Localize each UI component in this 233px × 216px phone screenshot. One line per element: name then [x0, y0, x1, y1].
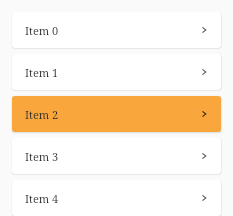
staticText: Item 4 — [25, 191, 59, 206]
button[interactable]: Item 1 — [12, 54, 221, 90]
button[interactable]: Item 4 — [12, 180, 221, 216]
staticText: Item 3 — [25, 149, 59, 164]
button[interactable]: Item 0 — [12, 12, 221, 48]
staticText: Item 2 — [25, 107, 59, 122]
button[interactable]: Item 3 — [12, 138, 221, 174]
button[interactable]: Item 2 — [12, 96, 221, 132]
staticText: Item 1 — [25, 65, 59, 80]
staticText: Item 0 — [25, 23, 59, 38]
